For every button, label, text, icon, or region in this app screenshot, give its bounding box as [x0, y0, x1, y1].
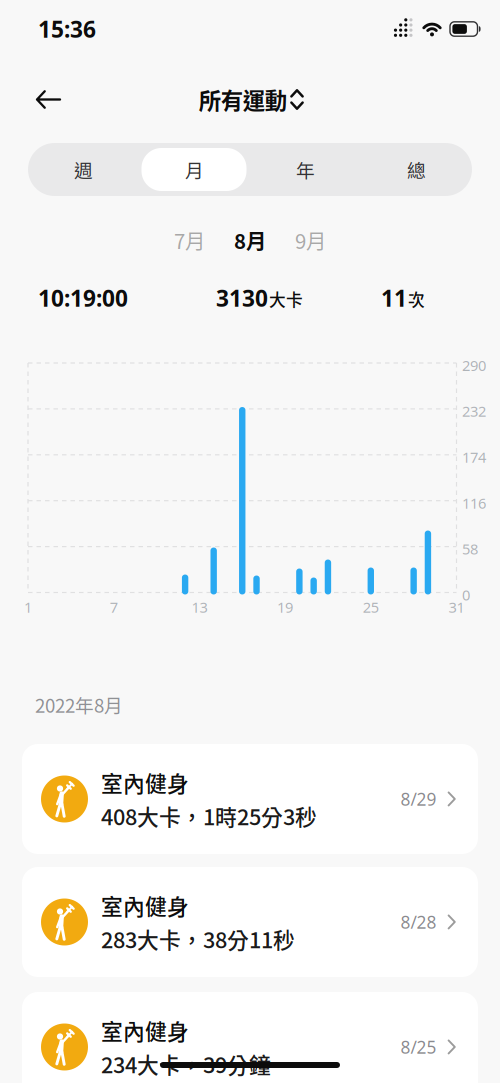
staticText: 232 [462, 401, 486, 421]
button[interactable]: 8月 [234, 225, 266, 255]
staticText: 室內健身 [101, 1014, 189, 1046]
staticText: 所有運動 [199, 83, 287, 116]
staticText: 7 [110, 597, 118, 617]
button[interactable]: 室內健身 [22, 867, 478, 977]
staticText: 8月 [234, 225, 266, 255]
staticText: 10:19:00 [38, 283, 128, 313]
staticText: 8/28 [400, 910, 436, 933]
button[interactable]: 月 [139, 143, 250, 196]
button[interactable]: 年 [250, 143, 361, 196]
button[interactable]: 週 [28, 143, 139, 196]
staticText: 月 [185, 156, 204, 183]
staticText: 2022年8月 [35, 691, 123, 718]
staticText: 234大卡，39分鐘 [101, 1048, 271, 1079]
button[interactable]: 9月 [295, 225, 326, 255]
button[interactable]: 室內健身 [22, 992, 478, 1083]
staticText: 年 [296, 156, 315, 183]
button[interactable] [141, 148, 246, 191]
staticText: 13 [191, 597, 207, 617]
staticText: 290 [462, 355, 486, 375]
button[interactable]: 總 [361, 143, 472, 196]
button[interactable]: 7月 [174, 225, 205, 255]
staticText: 8/25 [400, 1035, 436, 1058]
staticText: 15:36 [38, 14, 96, 44]
staticText: 58 [462, 539, 478, 559]
staticText: 1 [24, 597, 32, 617]
staticText: 室內健身 [101, 889, 189, 921]
staticText: 總 [407, 156, 426, 183]
staticText: 週 [74, 156, 93, 183]
staticText: 7月 [174, 225, 205, 255]
staticText: 大卡 [269, 287, 303, 311]
staticText: 174 [462, 447, 486, 467]
staticText: 25 [363, 597, 379, 617]
staticText: 19 [277, 597, 293, 617]
staticText: 8/29 [400, 787, 436, 810]
button[interactable]: 室內健身 [22, 744, 478, 854]
button[interactable] [23, 76, 74, 123]
staticText: 408大卡，1時25分3秒 [101, 800, 317, 831]
staticText: 9月 [295, 225, 326, 255]
staticText: 11 [381, 283, 407, 313]
staticText: 116 [462, 493, 486, 513]
staticText: 3130 [216, 283, 268, 313]
staticText: 次 [408, 287, 425, 311]
staticText: 283大卡，38分11秒 [101, 923, 295, 954]
staticText: 0 [462, 585, 470, 604]
staticText: 室內健身 [101, 766, 189, 798]
staticText: 31 [448, 597, 464, 617]
button[interactable]: 所有運動 [199, 83, 303, 116]
